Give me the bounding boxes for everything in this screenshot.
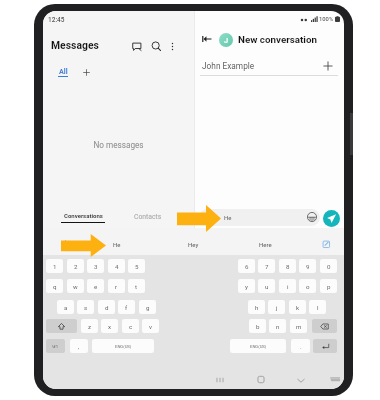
staticText: j [276,304,278,311]
button[interactable]: . [291,339,310,353]
staticText: v [149,323,152,330]
button[interactable]: e [87,279,104,293]
button[interactable]: , [70,339,88,353]
staticText: n [276,323,280,330]
staticText: u [265,283,269,290]
button[interactable]: 1 [46,259,63,273]
button[interactable]: z [81,319,98,333]
button[interactable]: q [46,279,63,293]
staticText: x [108,323,112,330]
button[interactable]: s [77,300,94,314]
staticText: d [105,304,109,311]
button[interactable]: Home [253,372,269,388]
staticText: k [296,304,300,311]
button[interactable]: o [299,279,316,293]
staticText: 5 [135,263,139,270]
button[interactable]: 3 [87,259,104,273]
button[interactable]: Recent apps [212,372,228,388]
button[interactable]: i [279,279,296,293]
staticText: c [129,323,133,330]
button[interactable]: x [101,319,118,333]
staticText: John Example [202,61,255,71]
staticText: 9 [306,263,310,270]
staticText: y [245,283,248,290]
button[interactable]: ENG(US) [230,339,286,353]
staticText: 12:45 [48,16,65,24]
button[interactable]: Back [200,32,214,46]
button[interactable] [196,55,344,75]
staticText: 100% [319,16,334,23]
button[interactable]: Stickers [306,211,318,223]
button[interactable]: d [98,300,115,314]
button[interactable]: ENG(US) [92,339,154,353]
button[interactable]: r [108,279,125,293]
button[interactable]: All [57,67,69,79]
button[interactable]: k [289,300,306,314]
staticText: 2 [74,263,78,270]
staticText: w [73,283,78,290]
staticText: i [287,283,289,290]
staticText: !#1 [52,344,59,349]
button[interactable]: 4 [108,259,125,273]
staticText: h [255,304,259,311]
button[interactable]: Hide keyboard [293,372,309,388]
staticText: 7 [265,263,269,270]
button[interactable]: Search [148,38,165,55]
button[interactable]: t [128,279,145,293]
button[interactable]: More options [164,38,181,55]
button[interactable]: 5 [128,259,145,273]
staticText: m [296,323,302,330]
button[interactable]: Backspace [312,319,337,333]
staticText: All [59,67,68,75]
button[interactable]: u [258,279,275,293]
button[interactable]: p [320,279,337,293]
button[interactable]: c [122,319,139,333]
button[interactable]: 6 [238,259,255,273]
button[interactable]: 8 [279,259,296,273]
staticText: J [224,36,229,45]
staticText: Hey [188,241,199,248]
button[interactable]: 0 [320,259,337,273]
button[interactable]: f [118,300,135,314]
staticText: 6 [245,263,249,270]
button[interactable]: j [268,300,285,314]
button[interactable]: Contacts [131,213,165,225]
button[interactable]: New conversation [129,38,146,55]
button[interactable]: l [309,300,326,314]
button[interactable]: Conversations [59,212,107,224]
button[interactable]: g [139,300,156,314]
button[interactable]: Change keyboard [328,372,342,388]
staticText: g [146,304,150,311]
button[interactable]: 2 [67,259,84,273]
button[interactable]: Add recipient [322,60,334,72]
button[interactable]: n [269,319,286,333]
staticText: 1 [53,263,57,270]
button[interactable]: Send [323,210,340,227]
button[interactable]: Enter [313,339,337,353]
staticText: Conversations [64,212,103,219]
button[interactable]: v [142,319,159,333]
button[interactable]: m [290,319,307,333]
button[interactable]: 7 [258,259,275,273]
staticText: f [125,304,128,311]
button[interactable]: b [249,319,266,333]
button[interactable]: !#1 [46,339,65,353]
button[interactable]: y [238,279,255,293]
staticText: No messages [43,140,194,150]
button[interactable]: h [248,300,265,314]
button[interactable]: w [67,279,84,293]
staticText: , [78,343,80,350]
staticText: ENG(US) [250,344,267,349]
staticText: o [306,283,310,290]
staticText: a [64,304,68,311]
staticText: l [317,304,319,311]
staticText: Messages [51,39,99,51]
button[interactable]: Add category [81,67,92,78]
button[interactable]: a [57,300,74,314]
staticText: 3 [94,263,98,270]
button[interactable]: Shift [46,319,77,333]
button[interactable]: 9 [299,259,316,273]
staticText: Here [259,241,272,248]
staticText: b [256,323,260,330]
button[interactable]: He [199,209,320,226]
